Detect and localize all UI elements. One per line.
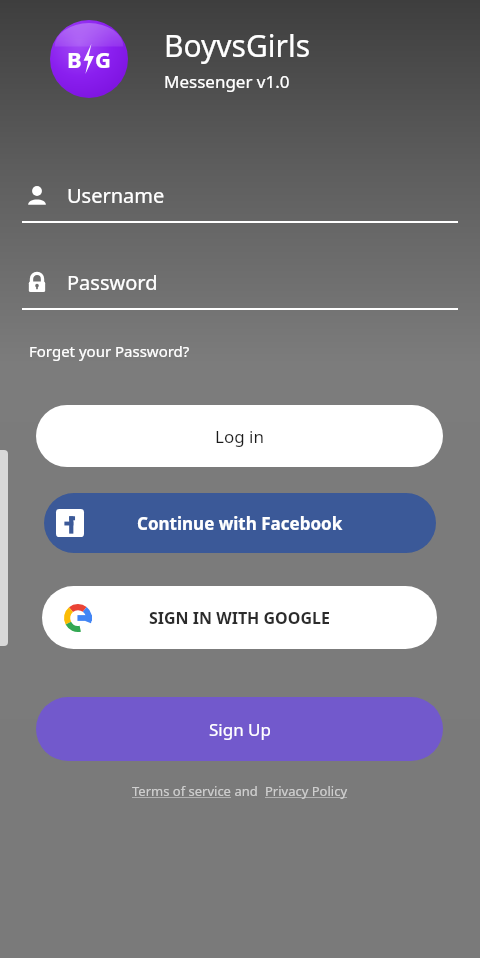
staticText: Log in	[215, 425, 264, 448]
staticText: SIGN IN WITH GOOGLE	[149, 607, 330, 629]
staticText: Messenger v1.0	[164, 70, 290, 93]
staticText: BoyvsGirls	[164, 25, 311, 66]
button[interactable]: Continue with Facebook	[44, 493, 436, 553]
button[interactable]: Privacy Policy	[265, 782, 348, 800]
other: Password	[25, 271, 49, 295]
button[interactable]: Forget your Password?	[29, 341, 190, 361]
button[interactable]: Username	[24, 182, 458, 209]
button[interactable]: Sign Up	[36, 697, 443, 761]
staticText: Privacy Policy	[265, 782, 348, 800]
staticText: Username	[67, 182, 165, 209]
other: BoyvsGirls logo	[50, 20, 128, 98]
button[interactable]: Password	[24, 269, 458, 296]
staticText: G	[95, 44, 111, 74]
button[interactable]: SIGN IN WITH GOOGLE	[42, 586, 437, 649]
other: Username	[25, 184, 49, 208]
other: Facebook	[56, 509, 84, 537]
staticText: Terms of service	[132, 782, 231, 800]
staticText: Forget your Password?	[29, 341, 190, 361]
staticText: and	[231, 782, 265, 800]
button[interactable]: Log in	[36, 405, 443, 467]
staticText: Password	[67, 269, 158, 296]
staticText: B	[67, 44, 82, 74]
button[interactable]: Terms of service	[132, 782, 231, 800]
other: Google	[64, 604, 92, 632]
staticText: Continue with Facebook	[137, 512, 343, 535]
staticText: Sign Up	[209, 718, 271, 741]
